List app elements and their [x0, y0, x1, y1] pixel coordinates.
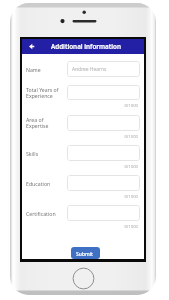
button[interactable] [67, 115, 140, 131]
staticText: Total Years of Experience [26, 86, 67, 100]
staticText: Certification [26, 210, 67, 217]
staticText: Area of Expertise [26, 116, 67, 130]
button[interactable]: Submit [71, 247, 100, 259]
staticText: 0/1000 [22, 134, 138, 140]
staticText: 0/1000 [22, 224, 138, 230]
staticText: Additional information [51, 42, 121, 51]
staticText: 0/1000 [22, 164, 138, 170]
staticText: Name [26, 66, 67, 73]
staticText: 0/1000 [22, 194, 138, 200]
button[interactable] [67, 85, 140, 100]
staticText: Skills [26, 150, 67, 157]
staticText: Education [26, 180, 67, 187]
button[interactable]: Back [22, 39, 144, 54]
staticText: Submit [76, 251, 93, 258]
button[interactable]: Back [27, 42, 36, 51]
button[interactable] [67, 145, 140, 161]
button[interactable] [67, 205, 140, 221]
staticText: 0/1000 [22, 103, 138, 109]
button[interactable] [67, 175, 140, 191]
staticText: Andree Hearns [72, 66, 107, 73]
button[interactable]: Andree Hearns [67, 61, 140, 77]
